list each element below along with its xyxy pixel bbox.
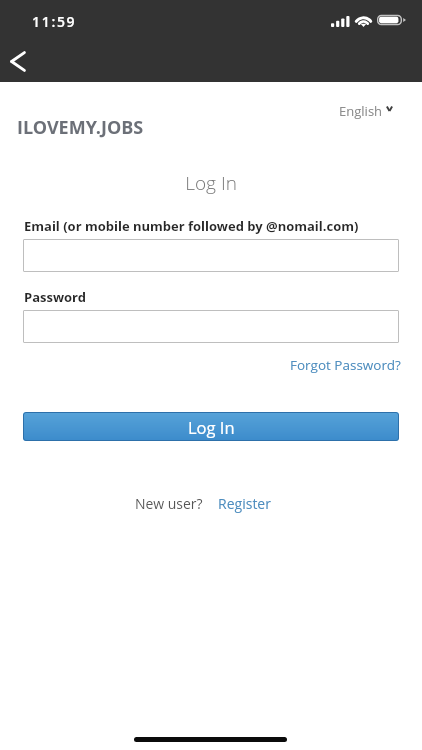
staticText: Register <box>218 494 271 513</box>
staticText: English <box>339 102 383 120</box>
button[interactable] <box>23 310 399 343</box>
staticText: 11:59 <box>32 12 77 31</box>
staticText: New user? <box>135 494 203 513</box>
staticText: Password <box>24 288 86 306</box>
button[interactable]: Log In <box>23 412 399 441</box>
button[interactable]: Forgot Password? <box>288 354 403 376</box>
staticText: ILOVEMY.JOBS <box>17 115 144 140</box>
staticText: Log In <box>0 170 422 196</box>
button[interactable]: Register <box>215 491 274 516</box>
staticText: Forgot Password? <box>290 356 401 374</box>
button[interactable]: Back <box>0 41 36 82</box>
button[interactable] <box>23 239 399 272</box>
button[interactable]: English <box>335 99 399 123</box>
staticText: Log In <box>188 416 235 438</box>
staticText: Email (or mobile number followed by @nom… <box>24 217 359 235</box>
